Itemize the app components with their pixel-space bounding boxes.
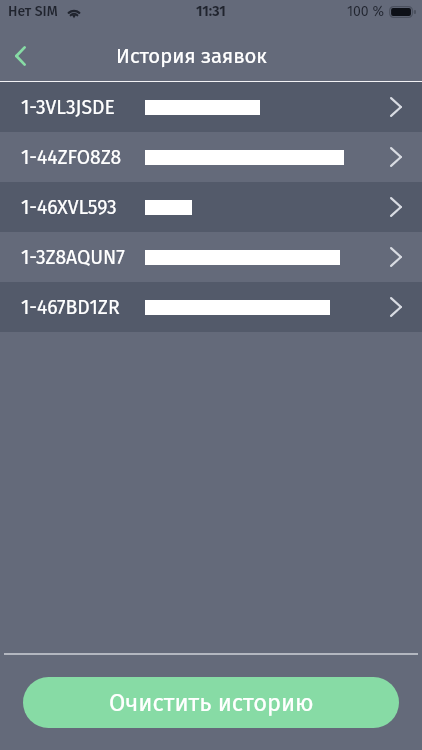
staticText: История заявок [116, 44, 267, 68]
staticText: 1-467BD1ZR [21, 296, 120, 319]
button[interactable]: 1-467BD1ZR [0, 282, 422, 332]
staticText: 11:31 [196, 3, 226, 20]
staticText: 1-44ZFO8Z8 [21, 146, 122, 169]
button[interactable]: 1-46XVL593 [0, 182, 422, 232]
button[interactable]: Очистить историю [23, 677, 399, 728]
staticText: 100 % [347, 3, 384, 20]
staticText: Очистить историю [109, 689, 314, 717]
staticText: 1-3Z8AQUN7 [21, 246, 125, 269]
button[interactable]: 1-3Z8AQUN7 [0, 232, 422, 282]
staticText: Нет SIM [8, 3, 58, 20]
staticText: 1-46XVL593 [21, 196, 117, 219]
button[interactable]: 1-44ZFO8Z8 [0, 132, 422, 182]
staticText: 1-3VL3JSDE [21, 96, 115, 119]
button[interactable]: 1-3VL3JSDE [0, 82, 422, 132]
button[interactable]: Back [0, 34, 42, 78]
